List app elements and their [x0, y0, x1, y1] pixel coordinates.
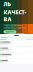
staticText: ПРОВЕРКА ПРОДУКЦИИ НА [3, 24, 22, 26]
button[interactable]: ПОДРОБНЕЕ [3, 30, 16, 34]
button[interactable] [0, 59, 33, 64]
staticText: ПОДРОБНЕЕ [5, 31, 14, 33]
staticText: СООТВЕТСТВИЕ СТАНДАРТАМ [3, 27, 25, 29]
staticText: КОНТРОЛЬ [3, 0, 27, 8]
button[interactable] [0, 53, 33, 58]
staticText: КАЧЕСТВА [3, 9, 26, 23]
button[interactable] [0, 47, 33, 52]
button[interactable] [0, 41, 33, 46]
